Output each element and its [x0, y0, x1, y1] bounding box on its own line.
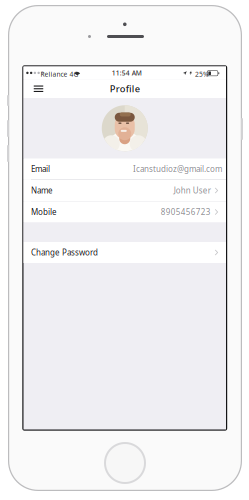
- staticText: Mobile: [31, 207, 57, 217]
- button[interactable]: Name: [23, 180, 226, 201]
- staticText: Name: [31, 185, 53, 196]
- button[interactable]: Email: [23, 158, 226, 179]
- staticText: 25%: [195, 70, 209, 79]
- staticText: 11:54 AM: [112, 69, 142, 77]
- staticText: Email: [31, 164, 50, 174]
- staticText: John User: [174, 185, 211, 196]
- button[interactable]: Menu: [26, 80, 50, 98]
- staticText: Reliance 4G: [41, 70, 79, 79]
- staticText: Icanstudioz@gmail.com: [133, 164, 222, 174]
- button[interactable]: Mobile: [23, 201, 226, 222]
- staticText: 8905456723: [161, 207, 211, 217]
- staticText: Change Password: [31, 247, 98, 258]
- button[interactable]: Change Password: [23, 242, 226, 263]
- staticText: Profile: [110, 83, 140, 95]
